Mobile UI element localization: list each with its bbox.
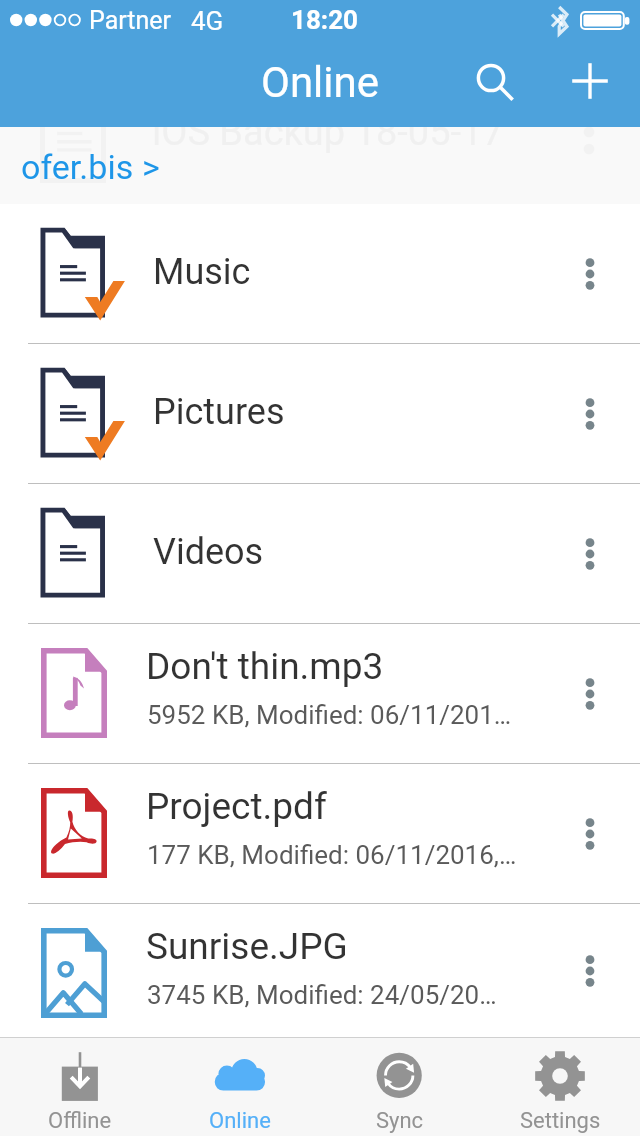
staticText: 5952 KB, Modified: 06/11/201… <box>147 700 547 730</box>
staticText: Online <box>261 58 379 107</box>
button[interactable]: Sync <box>320 1038 480 1136</box>
button[interactable]: Offline <box>0 1038 160 1136</box>
staticText: Music <box>153 251 251 293</box>
staticText: Pictures <box>153 391 285 433</box>
button[interactable]: More options <box>540 779 640 889</box>
staticText: Project.pdf <box>146 785 566 828</box>
staticText: 3745 KB, Modified: 24/05/20… <box>147 980 547 1010</box>
button[interactable]: More options <box>540 359 640 469</box>
staticText: > <box>142 147 160 187</box>
button[interactable]: More options <box>540 219 640 329</box>
staticText: Sync <box>376 1108 424 1134</box>
button[interactable]: Settings <box>480 1038 640 1136</box>
staticText: Partner <box>89 6 172 35</box>
staticText: 4G <box>191 6 224 36</box>
staticText: 177 KB, Modified: 06/11/2016,… <box>147 840 547 870</box>
button[interactable]: Sunrise.JPG <box>0 904 640 1037</box>
button[interactable]: Project.pdf <box>0 764 640 903</box>
staticText: Offline <box>48 1108 112 1134</box>
button[interactable]: More options <box>540 916 640 1026</box>
staticText: Don't thin.mp3 <box>146 645 566 688</box>
staticText: Settings <box>520 1108 601 1134</box>
button[interactable]: More options <box>540 499 640 609</box>
button[interactable]: More options <box>540 639 640 749</box>
staticText: ofer.bis <box>21 147 134 187</box>
staticText: Videos <box>153 531 264 573</box>
button[interactable]: Online <box>160 1038 320 1136</box>
button[interactable]: Music <box>0 204 640 343</box>
button[interactable]: Search <box>459 46 523 110</box>
button[interactable]: ofer.bis <box>13 143 168 191</box>
button[interactable]: Add <box>558 49 622 113</box>
staticText: Online <box>209 1108 271 1134</box>
button[interactable]: Pictures <box>0 344 640 483</box>
staticText: Sunrise.JPG <box>146 925 566 968</box>
button[interactable]: Don't thin.mp3 <box>0 624 640 763</box>
staticText: iOS Backup 18-05-17 <box>152 127 504 155</box>
staticText: 18:20 <box>291 5 359 35</box>
button[interactable]: Videos <box>0 484 640 623</box>
